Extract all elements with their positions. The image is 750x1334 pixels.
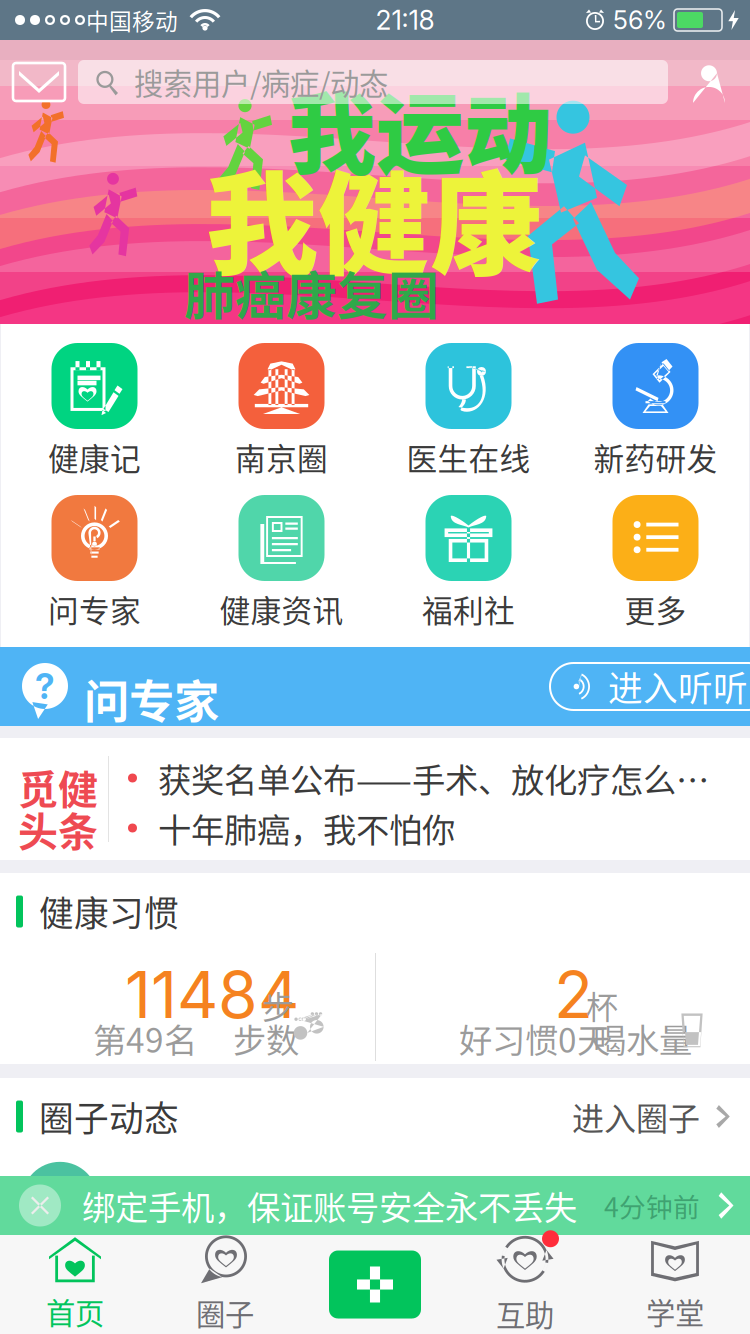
staticText: 问专家 <box>48 587 141 631</box>
staticText: 车姐姐 <box>114 1198 210 1244</box>
staticText: 好习惯0天 <box>459 1014 610 1062</box>
staticText: 中国移动 <box>86 4 178 36</box>
button[interactable]: 福利社 <box>375 476 562 628</box>
staticText: 健康资讯 <box>219 587 343 631</box>
button[interactable]: 十年肺癌，我不怕你 <box>128 808 728 848</box>
staticText: 肺癌康复圈 <box>184 256 439 329</box>
button[interactable]: 医生在线 <box>375 324 562 476</box>
staticText: 学堂 <box>646 1290 704 1333</box>
staticText: 问专家 <box>84 666 219 732</box>
staticText: 医生在线 <box>406 435 530 479</box>
staticText: 11484 <box>125 956 299 1033</box>
button[interactable]: 圈子 <box>150 1235 300 1334</box>
staticText: ? <box>35 665 55 707</box>
staticText: 进入圈子 <box>572 1093 700 1140</box>
staticText: 21:18 <box>375 4 434 36</box>
staticText: 喝水量 <box>593 1014 692 1062</box>
button[interactable]: 更多 <box>562 476 749 628</box>
staticText: 首页 <box>46 1290 104 1333</box>
button[interactable]: 问专家 <box>1 476 188 628</box>
button[interactable]: Messages <box>0 57 78 107</box>
button[interactable]: 新药研发 <box>562 324 749 476</box>
button[interactable]: 健康资讯 <box>188 476 375 628</box>
staticText: 圈子 <box>196 1291 254 1334</box>
staticText: 获奖名单公布——手术、放化疗怎么康复（... <box>137 754 728 802</box>
staticText: 我健康 <box>206 136 542 298</box>
button[interactable]: 学堂 <box>600 1235 750 1334</box>
staticText: 头条 <box>18 800 98 858</box>
button[interactable]: 互助 <box>450 1235 600 1334</box>
staticText: 新药研发 <box>593 435 717 479</box>
staticText: 互助 <box>496 1292 554 1334</box>
staticText: 我运动 <box>288 64 552 191</box>
staticText: 圈子动态 <box>23 1091 179 1142</box>
staticText: 十年肺癌，我不怕你 <box>137 804 455 852</box>
staticText: 进入听听 <box>592 661 748 712</box>
staticText: 福利社 <box>422 587 515 631</box>
button[interactable]: Profile <box>668 57 750 107</box>
button[interactable]: 进入圈子 <box>572 1086 732 1146</box>
staticText: 更多 <box>624 587 686 631</box>
staticText: 2 <box>554 956 593 1033</box>
staticText: 第49名 <box>93 1014 197 1062</box>
staticText: 56% <box>606 5 667 35</box>
button[interactable]: 健康记 <box>1 324 188 476</box>
staticText: 杯 <box>586 982 618 1028</box>
button[interactable]: 首页 <box>0 1235 150 1334</box>
staticText: 健康记 <box>48 435 141 479</box>
staticText: 健康习惯 <box>23 886 179 937</box>
staticText: 绑定手机，保证账号安全永不丢失 <box>82 1181 577 1230</box>
staticText: 步数 <box>233 1014 299 1062</box>
staticText: 步 <box>262 982 294 1028</box>
button[interactable]: 2 <box>375 950 750 1064</box>
button[interactable]: 搜索用户/病症/动态 <box>78 60 668 104</box>
staticText: 4分钟前 <box>604 1186 700 1225</box>
staticText: 搜索用户/病症/动态 <box>120 61 388 103</box>
button[interactable]: 南京圈 <box>188 324 375 476</box>
button[interactable]: 11484 <box>0 950 375 1064</box>
button[interactable]: ? <box>0 647 750 726</box>
button[interactable]: Create post <box>300 1235 450 1334</box>
staticText: 觅健 <box>18 758 98 816</box>
button[interactable]: Dismiss <box>10 1176 70 1234</box>
staticText: 南京圈 <box>235 435 328 479</box>
button[interactable]: 获奖名单公布——手术、放化疗怎么康复（... <box>128 758 728 798</box>
